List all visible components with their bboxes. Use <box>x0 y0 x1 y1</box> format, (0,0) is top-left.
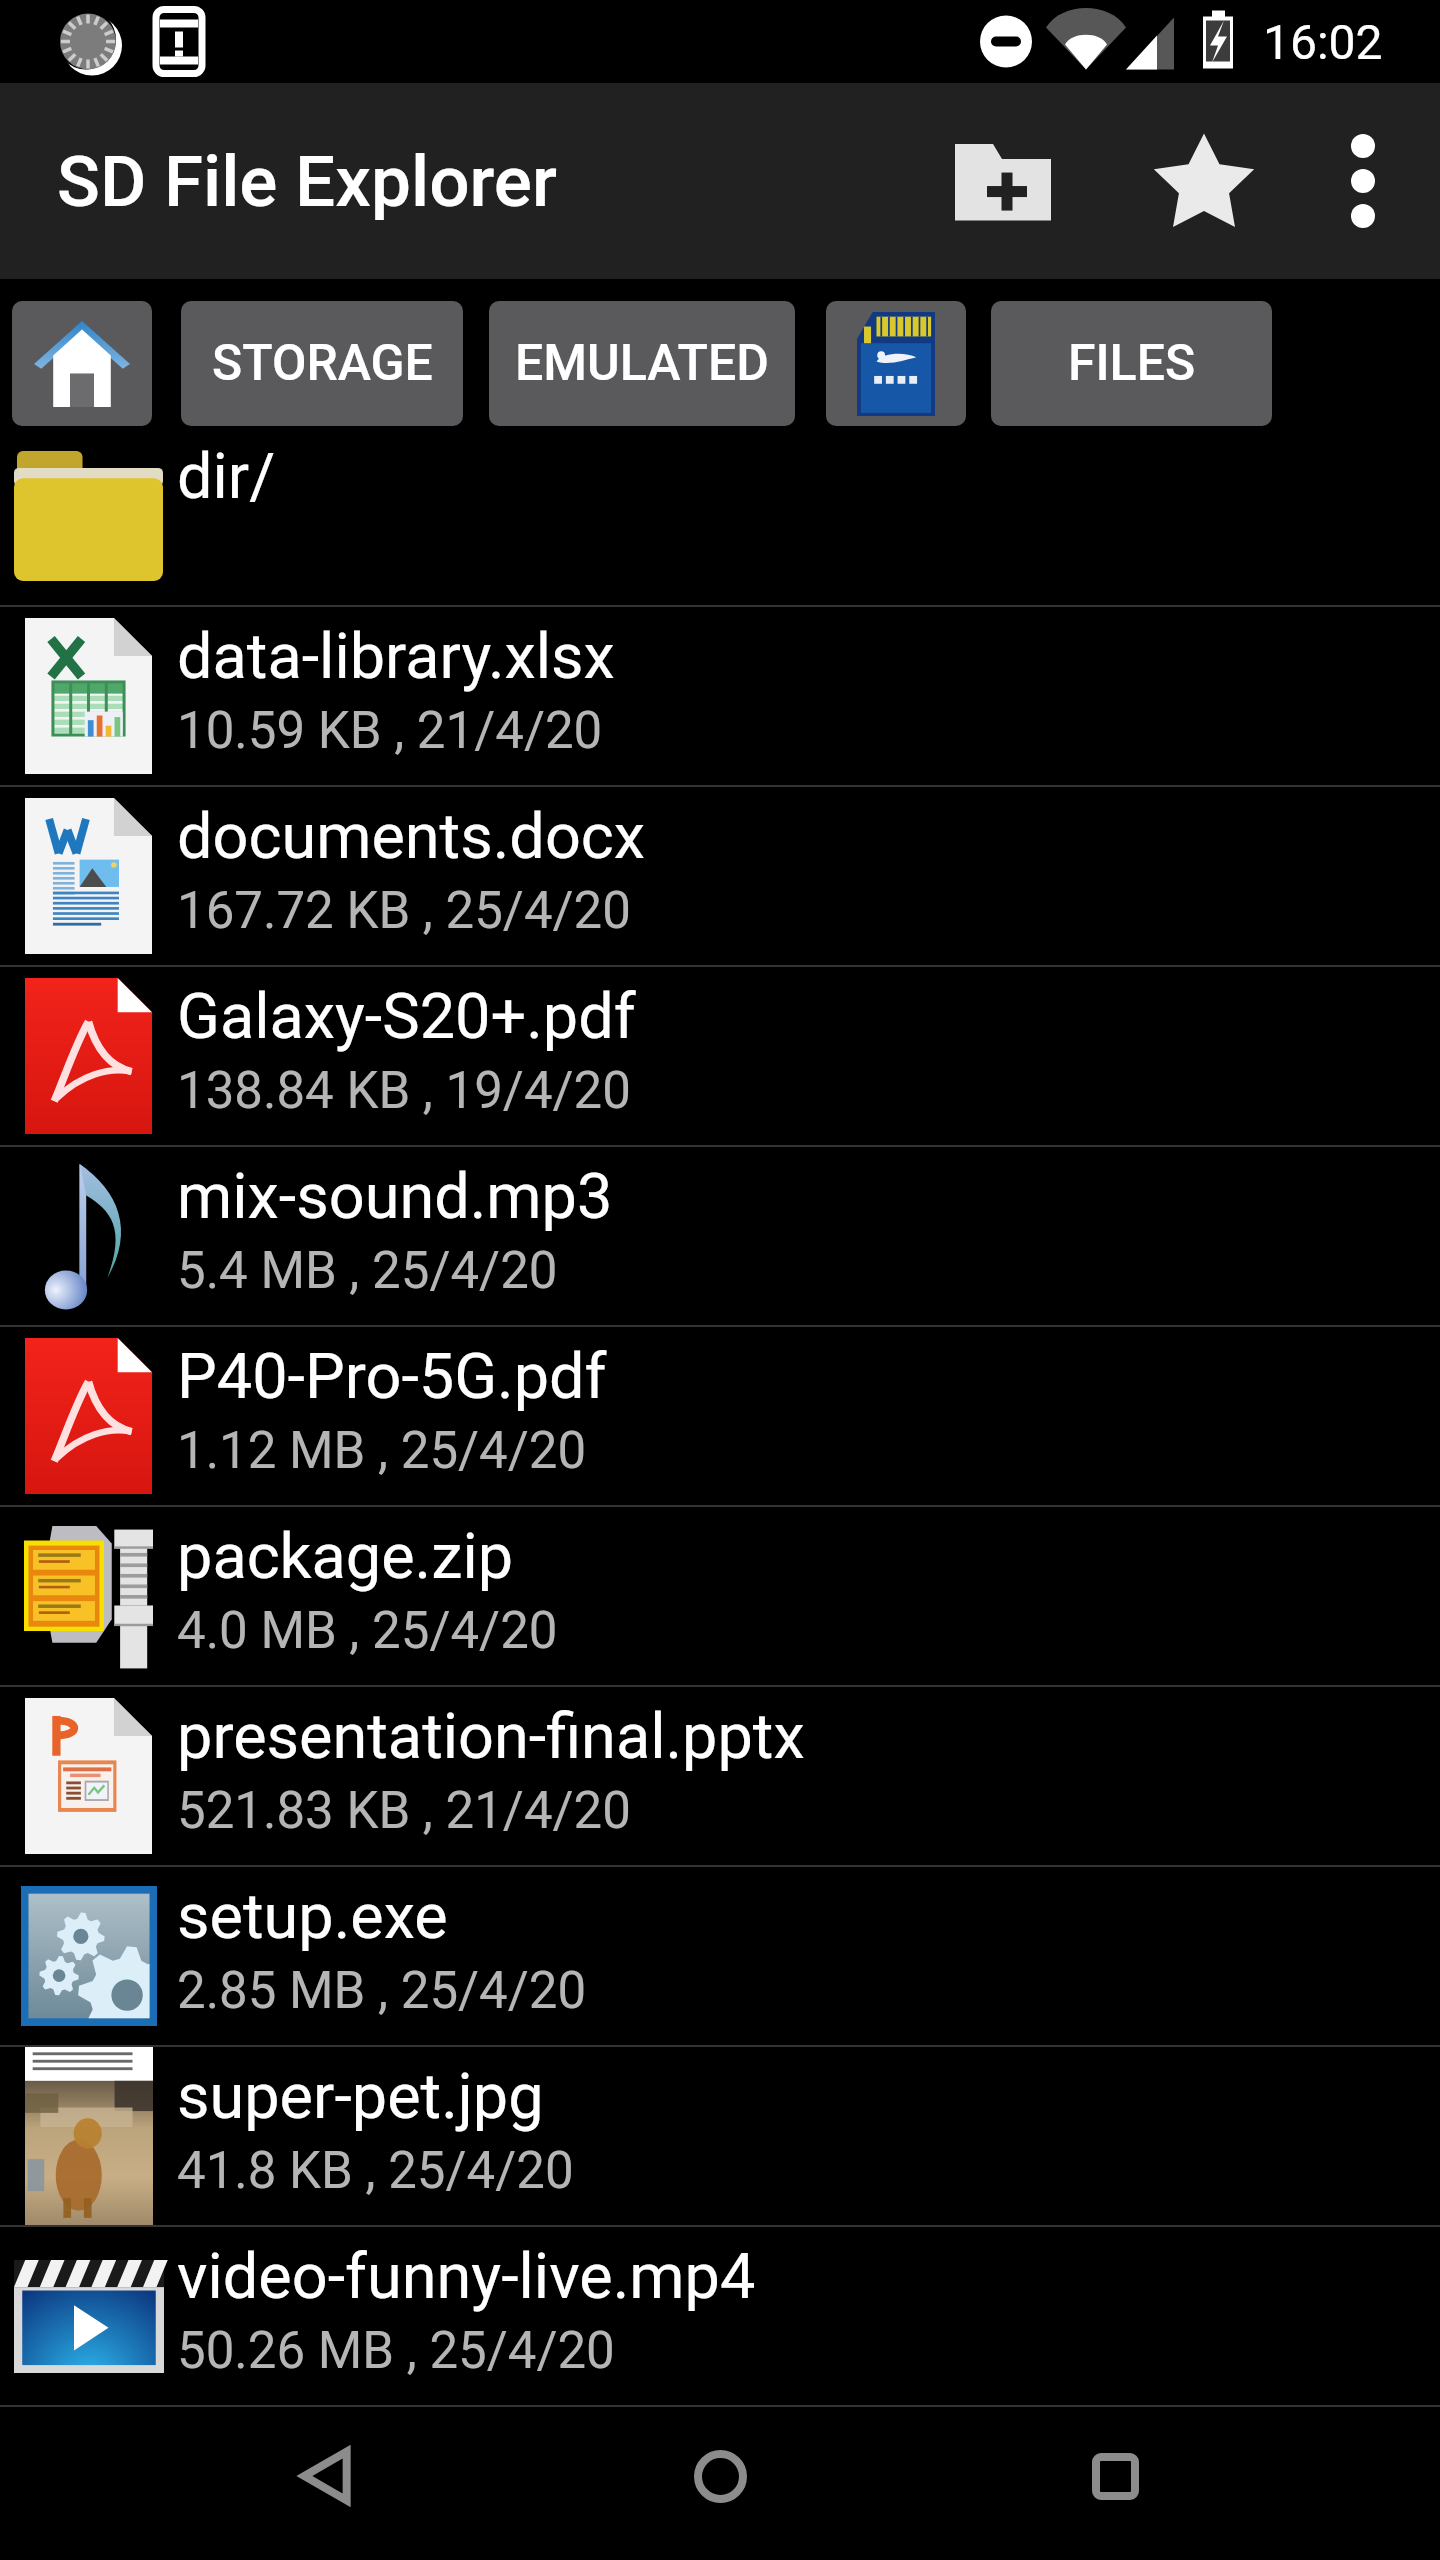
staticText: video-funny-live.mp4 <box>177 2240 756 2314</box>
staticText: presentation-final.pptx <box>177 1700 805 1774</box>
button[interactable]: Home <box>12 301 152 426</box>
staticText: 50.26 MB , 25/4/20 <box>177 2321 615 2381</box>
button[interactable]: Recent apps <box>1045 2416 1185 2536</box>
button[interactable]: Home <box>650 2416 790 2536</box>
staticText: setup.exe <box>177 1880 448 1954</box>
staticText: 521.83 KB , 21/4/20 <box>177 1781 631 1841</box>
button[interactable]: Galaxy-S20+.pdf <box>0 967 1440 1145</box>
staticText: FILES <box>1068 334 1196 393</box>
staticText: 41.8 KB , 25/4/20 <box>177 2141 574 2201</box>
button[interactable]: More options <box>1285 83 1440 279</box>
button[interactable]: presentation-final.pptx <box>0 1687 1440 1865</box>
staticText: 16:02 <box>1263 14 1383 70</box>
staticText: STORAGE <box>212 334 433 393</box>
button[interactable]: setup.exe <box>0 1867 1440 2045</box>
staticText: 1.12 MB , 25/4/20 <box>177 1421 587 1481</box>
staticText: 2.85 MB , 25/4/20 <box>177 1961 587 2021</box>
staticText: SD File Explorer <box>57 140 557 223</box>
button[interactable]: super-pet.jpg <box>0 2047 1440 2225</box>
staticText: documents.docx <box>177 800 646 874</box>
button[interactable]: EMULATED <box>489 301 795 426</box>
staticText: super-pet.jpg <box>177 2060 544 2134</box>
staticText: 10.59 KB , 21/4/20 <box>177 701 603 761</box>
button[interactable]: STORAGE <box>181 301 463 426</box>
staticText: 138.84 KB , 19/4/20 <box>177 1061 631 1121</box>
staticText: data-library.xlsx <box>177 620 615 694</box>
button[interactable]: SD card <box>826 301 966 426</box>
staticText: 5.4 MB , 25/4/20 <box>177 1241 558 1301</box>
staticText: EMULATED <box>515 334 769 393</box>
button[interactable]: package.zip <box>0 1507 1440 1685</box>
button[interactable]: video-funny-live.mp4 <box>0 2227 1440 2405</box>
button[interactable]: FILES <box>991 301 1272 426</box>
button[interactable]: documents.docx <box>0 787 1440 965</box>
staticText: mix-sound.mp3 <box>177 1160 613 1234</box>
button[interactable]: Back <box>255 2416 395 2536</box>
button[interactable]: dir/ <box>0 427 1440 605</box>
button[interactable]: mix-sound.mp3 <box>0 1147 1440 1325</box>
button[interactable]: New folder <box>883 83 1123 279</box>
staticText: package.zip <box>177 1520 514 1594</box>
button[interactable]: data-library.xlsx <box>0 607 1440 785</box>
staticText: P40-Pro-5G.pdf <box>177 1340 607 1414</box>
staticText: 167.72 KB , 25/4/20 <box>177 881 631 941</box>
staticText: dir/ <box>177 440 276 514</box>
button[interactable]: P40-Pro-5G.pdf <box>0 1327 1440 1505</box>
staticText: 4.0 MB , 25/4/20 <box>177 1601 558 1661</box>
button[interactable]: Favorites <box>1123 83 1285 279</box>
staticText: Galaxy-S20+.pdf <box>177 980 636 1054</box>
